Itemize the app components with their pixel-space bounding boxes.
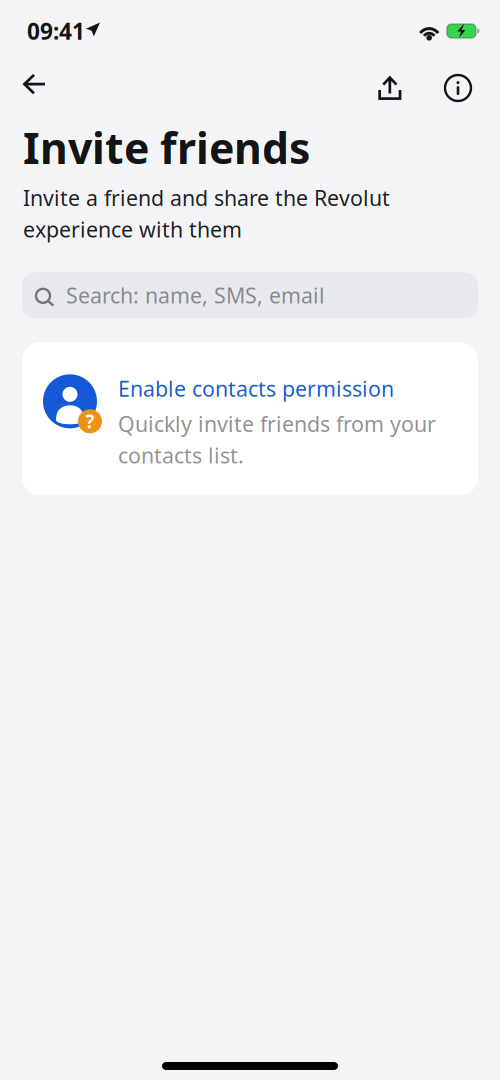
staticText: Invite friends bbox=[23, 119, 310, 176]
staticText: 09:41 bbox=[27, 16, 85, 46]
staticText: Enable contacts permission bbox=[118, 374, 394, 403]
button[interactable]: Information bbox=[434, 61, 482, 107]
button[interactable]: Search: name, SMS, email bbox=[22, 272, 478, 318]
staticText: ? bbox=[85, 409, 94, 434]
button[interactable]: ? bbox=[22, 342, 478, 495]
staticText: Search: name, SMS, email bbox=[66, 281, 325, 309]
button[interactable]: Share bbox=[366, 61, 414, 107]
staticText: Quickly invite friends from your contact… bbox=[118, 410, 436, 469]
button[interactable]: Back bbox=[11, 61, 58, 107]
staticText: Invite a friend and share the Revolut ex… bbox=[23, 184, 390, 243]
